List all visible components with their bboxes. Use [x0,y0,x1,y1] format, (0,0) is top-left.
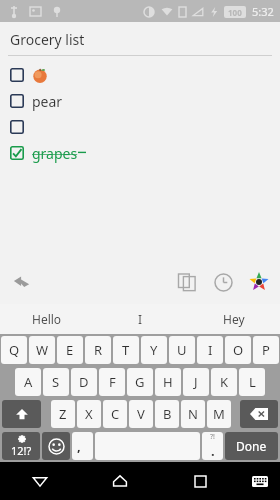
button[interactable]: Hey [187,304,280,334]
button[interactable]: ?! [202,432,223,460]
staticText: U [177,341,187,359]
staticText: B [163,405,172,423]
button[interactable]: N [181,400,205,428]
staticText: L [249,373,256,391]
button[interactable]: Assistant [244,267,274,297]
staticText: W [36,341,49,359]
staticText: Y [150,341,158,359]
button[interactable]: , [72,432,93,460]
button[interactable]: C [103,400,127,428]
button[interactable]: grapes [0,140,280,166]
staticText: J [194,373,198,391]
staticText: N [188,405,198,423]
button[interactable]: Back [0,462,80,500]
button[interactable]: Done [225,432,278,460]
button[interactable]: Y [141,336,167,364]
staticText: H [163,373,173,391]
staticText: D [79,373,89,391]
staticText: P [262,341,270,359]
button[interactable]: P [253,336,279,364]
staticText: T [122,341,130,359]
button[interactable]: A [15,368,41,396]
staticText: Z [59,405,67,423]
button[interactable]: Q [1,336,27,364]
staticText: X [85,405,93,423]
button[interactable]: B [155,400,179,428]
button[interactable]: Hello [0,304,94,334]
button[interactable]: Recent [208,267,238,297]
staticText: 5:32 [252,4,274,19]
staticText: Q [9,341,20,359]
button[interactable]: M [207,400,231,428]
button[interactable]: Copy [172,267,202,297]
button[interactable]: L [239,368,265,396]
staticText: F [109,373,116,391]
button[interactable]: Shift [2,400,41,428]
staticText: 12!? [11,443,32,458]
button[interactable]: J [183,368,209,396]
button[interactable]: Z [51,400,75,428]
button[interactable]: Recents [160,462,240,500]
staticText: Hello [32,311,62,327]
button[interactable]: Symbols [2,432,40,460]
staticText: 100 [228,7,242,18]
button[interactable]: U [169,336,195,364]
button[interactable]: E [57,336,83,364]
staticText: Hey [223,311,245,327]
staticText: pear [32,92,63,111]
button[interactable] [95,432,200,460]
button[interactable]: I [94,304,187,334]
button[interactable]: F [99,368,125,396]
button[interactable]: S [43,368,69,396]
staticText: , [77,437,81,455]
button[interactable]: Keyboard [240,462,280,500]
staticText: I [138,311,143,327]
button[interactable]: R [85,336,111,364]
button[interactable]: Undo [8,268,36,296]
button[interactable]: O [225,336,251,364]
staticText: K [220,373,229,391]
button[interactable]: K [211,368,237,396]
button[interactable]: pear [0,88,280,114]
button[interactable]: D [71,368,97,396]
staticText: O [233,341,244,359]
button[interactable] [0,62,280,88]
staticText: E [66,341,74,359]
button[interactable]: G [127,368,153,396]
button[interactable]: X [77,400,101,428]
staticText: C [111,405,120,423]
staticText: M [213,405,225,423]
button[interactable]: Emoji [42,432,70,460]
staticText: Grocery list [10,30,85,49]
button[interactable] [0,114,280,140]
button[interactable]: V [129,400,153,428]
staticText: R [94,341,103,359]
staticText: I [208,341,213,359]
staticText: Done [236,438,267,454]
staticText: ?! [210,432,215,442]
button[interactable]: I [197,336,223,364]
button[interactable]: H [155,368,181,396]
button[interactable]: Backspace [240,400,278,428]
button[interactable]: W [29,336,55,364]
staticText: A [24,373,33,391]
button[interactable]: Home [80,462,160,500]
staticText: G [135,373,145,391]
staticText: . [211,442,215,460]
button[interactable]: T [113,336,139,364]
staticText: S [52,373,60,391]
staticText: grapes [32,144,78,163]
staticText: V [137,405,145,423]
